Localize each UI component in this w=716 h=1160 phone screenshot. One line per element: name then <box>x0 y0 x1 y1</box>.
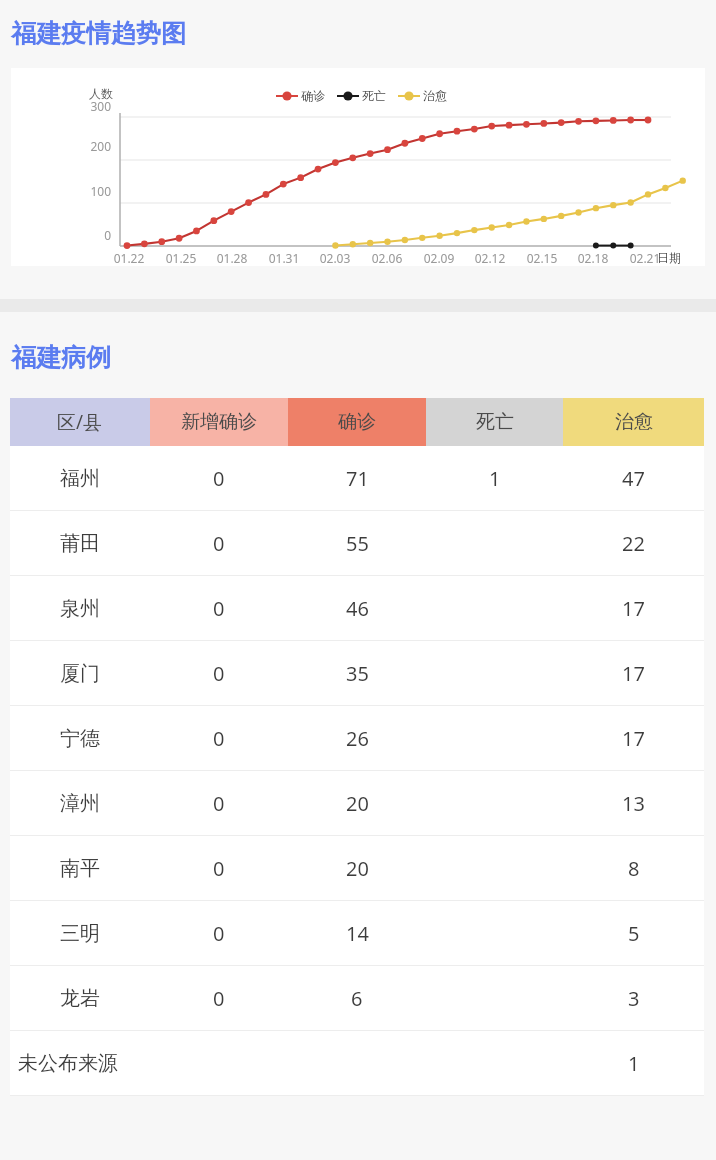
staticText: 漳州 <box>60 791 100 816</box>
staticText: 人数 <box>89 86 113 101</box>
button[interactable]: 区/县 <box>10 398 150 446</box>
staticText: 0 <box>213 725 225 752</box>
staticText: 新增确诊 <box>181 410 257 434</box>
staticText: 13 <box>622 790 645 817</box>
staticText: 35 <box>346 660 369 687</box>
staticText: 福州 <box>60 466 100 491</box>
staticText: 17 <box>622 660 645 687</box>
staticText: 未公布来源 <box>18 1051 118 1076</box>
staticText: 8 <box>628 855 640 882</box>
staticText: 47 <box>622 465 645 492</box>
staticText: 02.03 <box>311 250 359 266</box>
staticText: 死亡 <box>476 410 514 434</box>
staticText: 福建疫情趋势图 <box>11 18 186 49</box>
button[interactable]: 泉州 <box>10 576 704 641</box>
button[interactable]: 新增确诊 <box>150 398 288 446</box>
staticText: 治愈 <box>423 88 447 103</box>
staticText: 0 <box>213 790 225 817</box>
staticText: 300 <box>63 98 111 114</box>
staticText: 26 <box>346 725 369 752</box>
staticText: 确诊 <box>338 410 376 434</box>
staticText: 02.06 <box>363 250 411 266</box>
staticText: 71 <box>346 465 369 492</box>
staticText: 1 <box>628 1050 640 1077</box>
staticText: 17 <box>622 595 645 622</box>
staticText: 46 <box>346 595 369 622</box>
staticText: 治愈 <box>615 410 653 434</box>
staticText: 02.12 <box>466 250 514 266</box>
staticText: 3 <box>628 985 640 1012</box>
staticText: 0 <box>63 227 111 243</box>
button[interactable]: 未公布来源 <box>10 1031 704 1096</box>
staticText: 莆田 <box>60 531 100 556</box>
staticText: 0 <box>213 855 225 882</box>
button[interactable]: 宁德 <box>10 706 704 771</box>
staticText: 1 <box>489 465 501 492</box>
staticText: 02.18 <box>569 250 617 266</box>
staticText: 200 <box>63 138 111 154</box>
staticText: 0 <box>213 660 225 687</box>
button[interactable]: 三明 <box>10 901 704 966</box>
staticText: 宁德 <box>60 726 100 751</box>
staticText: 0 <box>213 465 225 492</box>
staticText: 20 <box>346 855 369 882</box>
staticText: 22 <box>622 530 645 557</box>
staticText: 02.09 <box>415 250 463 266</box>
staticText: 死亡 <box>362 88 386 103</box>
button[interactable]: 治愈 <box>563 398 704 446</box>
staticText: 02.15 <box>518 250 566 266</box>
button[interactable]: 死亡 <box>426 398 563 446</box>
staticText: 福建病例 <box>11 342 111 373</box>
staticText: 龙岩 <box>60 986 100 1011</box>
staticText: 01.25 <box>157 250 205 266</box>
staticText: 6 <box>351 985 363 1012</box>
staticText: 0 <box>213 985 225 1012</box>
staticText: 0 <box>213 920 225 947</box>
button[interactable]: 确诊 <box>288 398 426 446</box>
button[interactable]: 龙岩 <box>10 966 704 1031</box>
button[interactable]: 漳州 <box>10 771 704 836</box>
staticText: 泉州 <box>60 596 100 621</box>
staticText: 南平 <box>60 856 100 881</box>
staticText: 0 <box>213 595 225 622</box>
staticText: 17 <box>622 725 645 752</box>
staticText: 0 <box>213 530 225 557</box>
staticText: 02.21 <box>621 250 669 266</box>
button[interactable]: 厦门 <box>10 641 704 706</box>
staticText: 厦门 <box>60 661 100 686</box>
staticText: 55 <box>346 530 369 557</box>
staticText: 01.28 <box>208 250 256 266</box>
staticText: 100 <box>63 183 111 199</box>
staticText: 01.31 <box>260 250 308 266</box>
button[interactable]: 莆田 <box>10 511 704 576</box>
staticText: 5 <box>628 920 640 947</box>
staticText: 确诊 <box>301 88 325 103</box>
staticText: 01.22 <box>105 250 153 266</box>
button[interactable]: 南平 <box>10 836 704 901</box>
button[interactable]: 福州 <box>10 446 704 511</box>
staticText: 20 <box>346 790 369 817</box>
staticText: 区/县 <box>57 409 103 435</box>
button[interactable]: 人数 <box>11 68 705 266</box>
staticText: 14 <box>346 920 369 947</box>
staticText: 日期 <box>657 250 681 265</box>
staticText: 三明 <box>60 921 100 946</box>
